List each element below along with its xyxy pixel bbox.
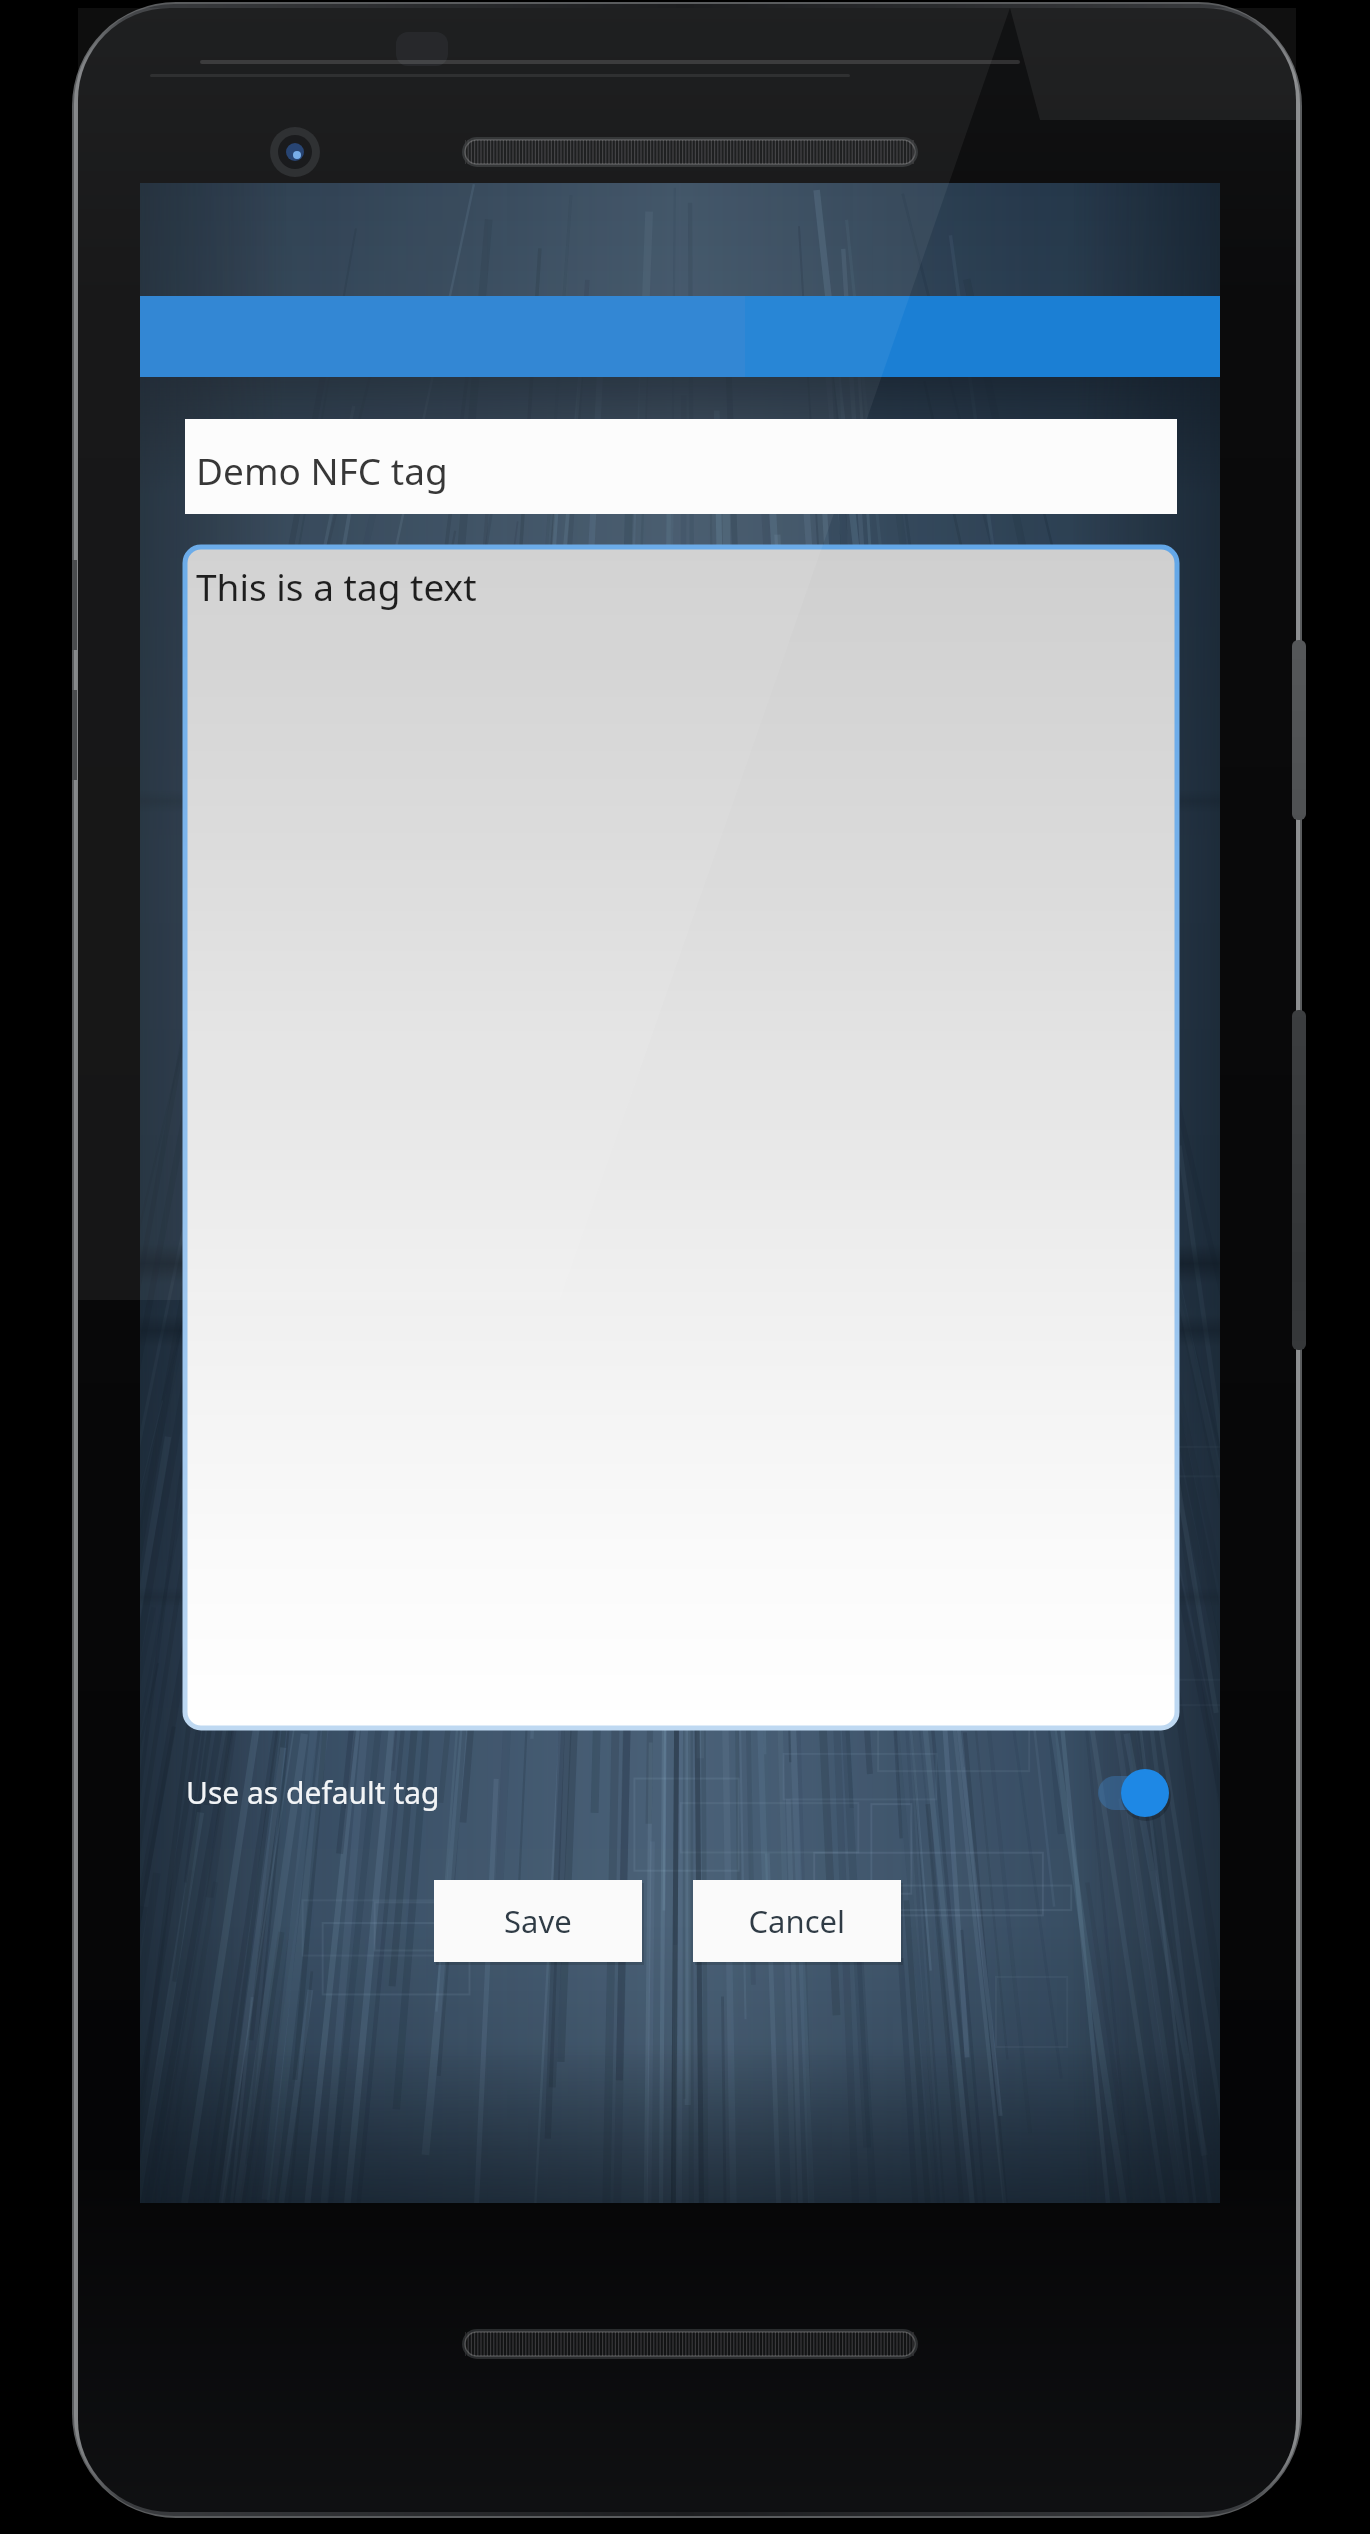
- button[interactable]: Use as default tag: [160, 1758, 1200, 1830]
- button[interactable]: Cancel: [693, 1880, 901, 1962]
- button[interactable]: Save: [434, 1880, 642, 1962]
- button[interactable]: Tag text field: [185, 547, 1177, 1728]
- button[interactable]: Tag title field: [185, 419, 1177, 514]
